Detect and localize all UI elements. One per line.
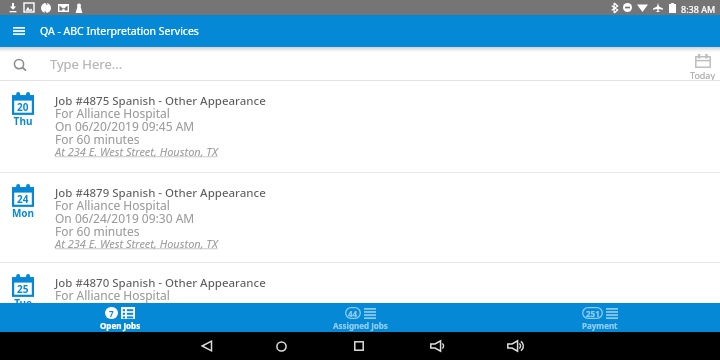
staticText: 7: [109, 308, 114, 319]
staticText: Mon: [3, 206, 43, 220]
staticText: At 234 E. West Street, Houston, TX: [55, 144, 218, 159]
button[interactable]: Search: [6, 52, 34, 81]
staticText: 251: [586, 308, 600, 319]
staticText: At 234 E. West Street, Houston, TX: [55, 236, 218, 251]
button[interactable]: Menu: [5, 15, 33, 47]
staticText: On 06/25/2019 10:00 AM: [55, 300, 195, 303]
button[interactable]: Volume down: [420, 332, 454, 360]
button[interactable]: Recents: [342, 332, 376, 360]
staticText: Today: [685, 69, 720, 81]
button[interactable]: Volume up: [497, 332, 531, 360]
button[interactable]: 24: [0, 173, 720, 262]
staticText: Type Here...: [50, 55, 123, 73]
staticText: Job #4870 Spanish - Other Appearance: [55, 275, 266, 291]
staticText: Job #4875 Spanish - Other Appearance: [55, 93, 266, 109]
staticText: 25: [17, 282, 29, 296]
staticText: For 60 minutes: [55, 131, 140, 147]
staticText: Open Jobs: [100, 320, 141, 331]
staticText: Job #4879 Spanish - Other Appearance: [55, 185, 266, 201]
button[interactable]: 7: [0, 303, 240, 332]
button[interactable]: Home: [264, 332, 298, 360]
button[interactable]: 25: [0, 263, 720, 303]
button[interactable]: 251: [480, 303, 720, 332]
staticText: 24: [17, 192, 29, 206]
staticText: For Alliance Hospital: [55, 197, 170, 213]
button[interactable]: Today: [685, 52, 720, 81]
staticText: For Alliance Hospital: [55, 287, 170, 303]
button[interactable]: Back: [189, 332, 223, 360]
staticText: For 60 minutes: [55, 223, 140, 239]
staticText: QA - ABC Interpretation Services: [40, 24, 199, 38]
staticText: On 06/24/2019 09:30 AM: [55, 210, 195, 226]
staticText: Assigned Jobs: [333, 320, 388, 331]
staticText: 20: [17, 100, 29, 114]
button[interactable]: 44: [240, 303, 480, 332]
staticText: On 06/20/2019 09:45 AM: [55, 118, 195, 134]
staticText: Payment: [582, 320, 618, 331]
staticText: 8:38 AM: [681, 3, 716, 15]
staticText: 44: [348, 308, 358, 319]
staticText: For Alliance Hospital: [55, 105, 170, 121]
staticText: Tue: [3, 296, 43, 303]
staticText: Thu: [3, 114, 43, 128]
button[interactable]: 20: [0, 81, 720, 172]
